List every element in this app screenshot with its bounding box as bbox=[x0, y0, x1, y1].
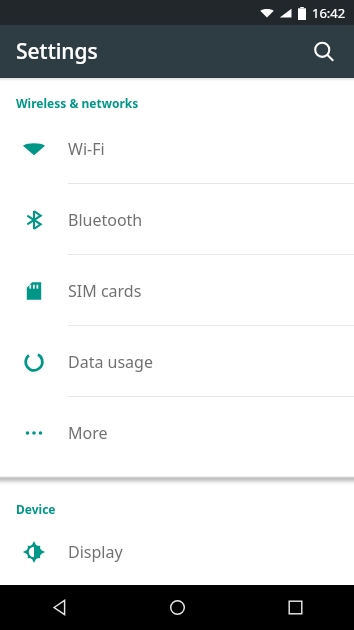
staticText: Display bbox=[68, 541, 123, 563]
staticText: Data usage bbox=[68, 351, 153, 373]
staticText: SIM cards bbox=[68, 280, 142, 302]
staticText: Settings bbox=[16, 37, 98, 66]
button[interactable]: Bluetooth bbox=[0, 184, 354, 255]
button[interactable]: Wi-Fi bbox=[0, 113, 354, 184]
button[interactable]: Search bbox=[302, 30, 346, 74]
button[interactable]: Home bbox=[118, 585, 236, 630]
staticText: Wireless & networks bbox=[16, 95, 139, 111]
staticText: 16:42 bbox=[312, 4, 346, 22]
button[interactable]: SIM cards bbox=[0, 255, 354, 326]
staticText: Wi-Fi bbox=[68, 138, 105, 160]
button[interactable]: Data usage bbox=[0, 326, 354, 397]
button[interactable]: Recents bbox=[236, 585, 354, 630]
button[interactable]: Display bbox=[0, 519, 354, 585]
button[interactable]: Back bbox=[0, 585, 118, 630]
staticText: Device bbox=[16, 501, 56, 517]
staticText: More bbox=[68, 422, 108, 444]
staticText: Bluetooth bbox=[68, 209, 143, 231]
button[interactable]: More bbox=[0, 397, 354, 468]
